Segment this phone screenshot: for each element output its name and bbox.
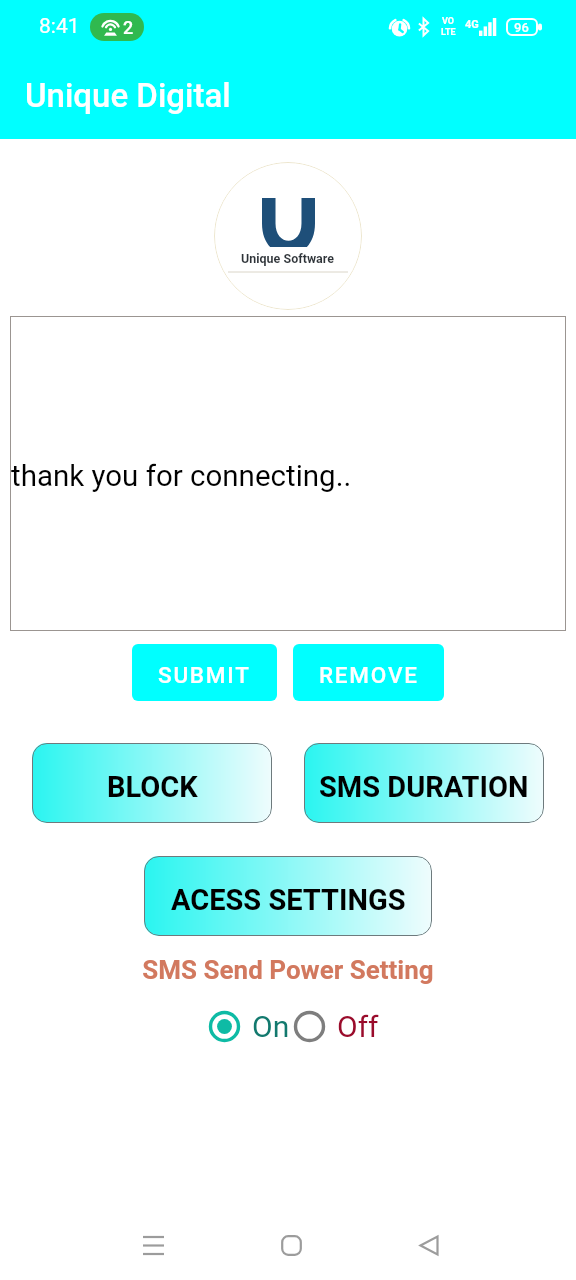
staticText: Unique Digital [25, 76, 231, 115]
staticText: 4G [465, 18, 479, 31]
button[interactable]: SUBMIT [132, 644, 277, 701]
staticText: VO [442, 16, 455, 27]
staticText: 8:41 [39, 14, 80, 39]
button[interactable]: SMS DURATION [304, 743, 544, 823]
staticText: thank you for connecting.. [11, 459, 352, 494]
staticText: LTE [441, 27, 456, 38]
staticText: SMS Send Power Setting [0, 955, 576, 985]
button[interactable]: ACESS SETTINGS [144, 856, 432, 936]
staticText: SUBMIT [158, 662, 251, 688]
button[interactable]: Off [293, 1009, 379, 1044]
button[interactable]: Recent apps [124, 1216, 182, 1274]
button[interactable]: On [208, 1009, 290, 1044]
staticText: On [252, 1009, 290, 1044]
button[interactable]: BLOCK [32, 743, 272, 823]
staticText: REMOVE [319, 662, 419, 688]
button[interactable]: REMOVE [293, 644, 444, 701]
staticText: 2 [123, 17, 134, 38]
button[interactable]: Home [262, 1216, 320, 1274]
button[interactable]: thank you for connecting.. [10, 316, 566, 631]
staticText: SMS DURATION [319, 770, 529, 804]
staticText: ACESS SETTINGS [171, 883, 406, 917]
button[interactable]: Back [400, 1216, 458, 1274]
staticText: BLOCK [107, 770, 198, 804]
staticText: Off [337, 1009, 379, 1044]
staticText: 96 [514, 20, 529, 35]
staticText: Unique Software [241, 251, 335, 266]
